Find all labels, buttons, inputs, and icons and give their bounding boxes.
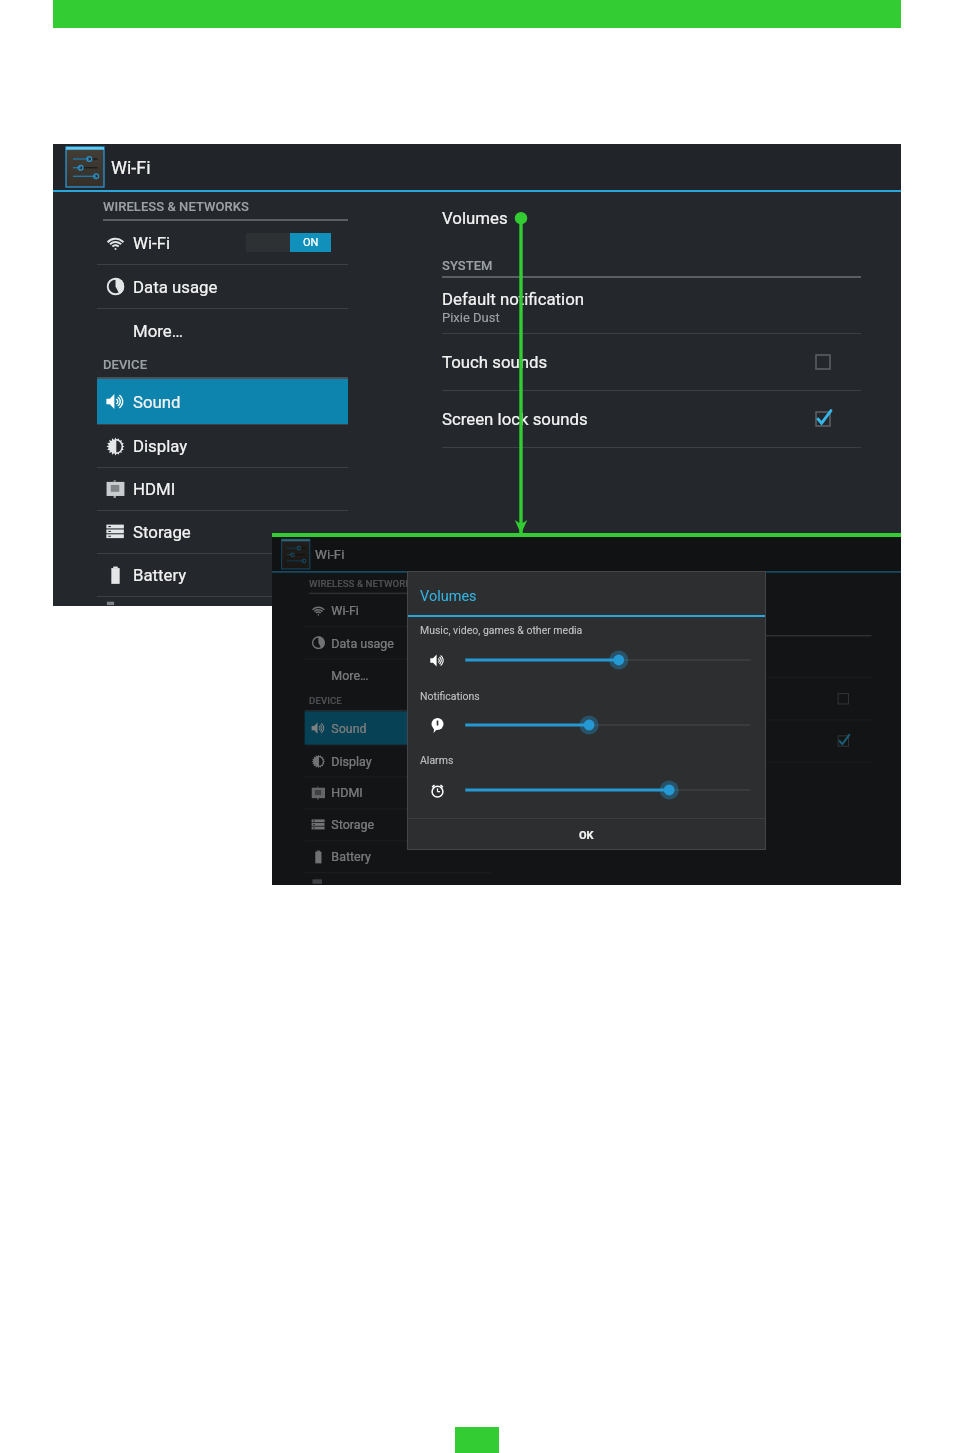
button[interactable]: Alarms volume slider — [453, 779, 761, 801]
button[interactable]: Wi-Fi — [97, 221, 348, 264]
staticText: OK — [579, 829, 594, 842]
button[interactable]: ON — [246, 233, 331, 252]
staticText: Sound — [133, 392, 181, 412]
button[interactable]: Notifications volume slider — [453, 714, 761, 736]
button[interactable]: Settings — [282, 539, 310, 569]
button[interactable]: Display — [305, 745, 491, 777]
button[interactable]: Storage — [305, 809, 491, 840]
button[interactable]: Sound — [97, 379, 348, 424]
button[interactable]: OK — [408, 819, 765, 851]
staticText: Storage — [133, 522, 191, 542]
button[interactable]: Screen lock sounds — [442, 391, 861, 447]
staticText: More… — [133, 321, 183, 341]
staticText: DEVICE — [309, 695, 342, 706]
button[interactable]: Default notification — [561, 636, 871, 677]
staticText: Screen lock sounds — [442, 409, 588, 429]
staticText: Display — [133, 436, 188, 456]
staticText: DEVICE — [103, 357, 148, 372]
button[interactable]: Settings — [66, 147, 104, 187]
staticText: Pixie Dust — [561, 660, 604, 671]
staticText: ON — [303, 236, 319, 249]
button[interactable]: Default notification — [442, 278, 861, 333]
staticText: Default notification — [561, 645, 667, 659]
button[interactable]: Battery — [305, 841, 491, 872]
button[interactable]: Data usage — [305, 627, 491, 659]
button[interactable]: More… — [97, 309, 348, 352]
staticText: WIRELESS & NETWORKS — [103, 199, 249, 214]
staticText: SYSTEM — [442, 258, 493, 273]
staticText: Storage — [331, 817, 374, 832]
staticText: Battery — [331, 849, 371, 864]
button[interactable]: Screen lock sounds — [561, 720, 871, 762]
staticText: Pixie Dust — [442, 310, 500, 325]
button[interactable]: Apps — [305, 873, 491, 885]
button[interactable]: Battery — [97, 554, 348, 596]
staticText: Data usage — [331, 636, 394, 650]
staticText: Display — [331, 754, 372, 768]
staticText: Notifications — [420, 690, 480, 702]
button[interactable]: Storage — [97, 511, 348, 553]
staticText: Data usage — [133, 277, 218, 297]
button[interactable]: Apps — [97, 597, 348, 606]
button[interactable]: Wi-Fi — [305, 594, 491, 626]
staticText: Wi-Fi — [133, 233, 170, 253]
button[interactable]: Volumes — [442, 192, 861, 243]
staticText: Volumes — [420, 588, 477, 605]
staticText: Default notification — [442, 289, 585, 309]
staticText: WIRELESS & NETWORKS — [309, 578, 417, 589]
button[interactable]: Data usage — [97, 265, 348, 308]
staticText: Touch sounds — [442, 352, 548, 372]
staticText: SYSTEM — [561, 622, 598, 633]
staticText: HDMI — [331, 786, 363, 800]
button[interactable]: Music, video, games & other media volume… — [453, 649, 761, 671]
staticText: HDMI — [133, 479, 176, 499]
button[interactable]: More… — [305, 659, 491, 691]
button[interactable]: Touch sounds — [561, 678, 871, 720]
button[interactable]: Volumes — [561, 573, 871, 610]
button[interactable]: ON — [415, 603, 478, 617]
staticText: Alarms — [420, 754, 454, 766]
staticText: Volumes — [442, 208, 508, 228]
staticText: Wi-Fi — [331, 603, 359, 618]
button[interactable]: Sound — [305, 711, 491, 745]
button[interactable]: HDMI — [97, 468, 348, 510]
staticText: Music, video, games & other media — [420, 624, 583, 636]
staticText: Wi-Fi — [315, 547, 345, 562]
button[interactable]: Touch sounds — [442, 334, 861, 390]
button[interactable]: Display — [97, 425, 348, 467]
button[interactable]: HDMI — [305, 777, 491, 809]
staticText: Wi-Fi — [111, 157, 151, 178]
staticText: Battery — [133, 565, 187, 585]
staticText: Sound — [331, 721, 367, 736]
staticText: More… — [331, 668, 368, 683]
